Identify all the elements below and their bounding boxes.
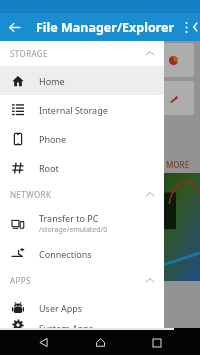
staticText: Root [39,162,59,174]
staticText: STORAGE [10,48,48,59]
button[interactable]: Root [0,153,164,182]
staticText: Internal Storage [39,104,108,116]
staticText: Connections [39,248,92,260]
staticText: NETWORK [10,189,52,200]
staticText: /storage/emulated/0 [39,225,108,235]
button[interactable]: User Apps [0,293,164,322]
button[interactable]: Connections [0,239,164,268]
button[interactable]: Home [86,330,114,355]
staticText: Transfer to PC [39,212,99,224]
button[interactable]: Transfer to PC [0,207,164,239]
button[interactable]: More options [179,13,193,41]
button[interactable]: Back [0,13,28,41]
button[interactable]: Phone [0,124,164,153]
staticText: System Apps [39,322,94,328]
button[interactable]: Internal Storage [0,95,164,124]
staticText: MORE [166,159,190,170]
staticText: User Apps [39,302,83,314]
staticText: Home [39,75,65,87]
button[interactable]: System Apps [0,322,164,328]
staticText: Phone [39,133,67,145]
staticText: APPS [10,275,31,286]
button[interactable]: Home [0,66,164,95]
button[interactable]: Recent apps [143,330,171,355]
button[interactable]: Back [29,330,57,355]
staticText: File Manager/Explorer [36,19,175,36]
